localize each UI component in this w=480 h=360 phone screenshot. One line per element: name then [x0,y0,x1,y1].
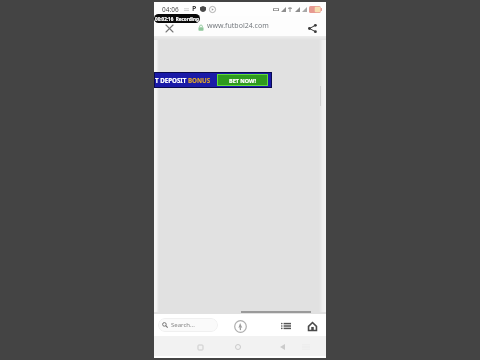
staticText: P [192,4,197,14]
staticText: BET NOW! [229,77,256,84]
button[interactable]: Downloads [231,317,249,335]
staticText: 00:02:16 Recording [155,16,199,22]
staticText: T DEPOSIT [155,76,188,84]
staticText: Search... [171,321,195,329]
button[interactable]: Share [303,19,321,37]
button[interactable]: Home [230,339,246,355]
button[interactable]: T DEPOSIT [154,72,272,88]
button[interactable]: Recent apps [192,339,208,355]
staticText: www.futbol24.com [207,21,269,31]
button[interactable]: Back [274,339,290,355]
staticText: 04:06 [162,5,179,14]
button[interactable]: Home [303,317,321,335]
staticText: BONUS [188,76,211,84]
button[interactable]: Tabs [277,317,295,335]
button[interactable]: Search... [158,318,218,332]
button[interactable]: Close tab [160,19,178,37]
button[interactable]: BET NOW! [217,74,268,86]
